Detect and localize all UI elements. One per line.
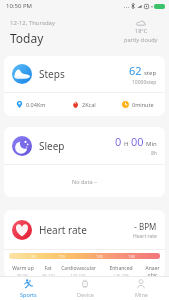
staticText: Anaerobic [145, 265, 160, 278]
button[interactable]: Steps [4, 56, 165, 116]
staticText: 10000step [132, 79, 157, 86]
button[interactable]: Mine [113, 277, 169, 300]
staticText: 62 [129, 63, 142, 78]
staticText: Steps [39, 67, 65, 81]
staticText: 80-95 [17, 273, 28, 278]
staticText: partly cloudy [124, 36, 158, 43]
staticText: 138 [128, 254, 135, 259]
staticText: 0 [115, 134, 122, 149]
staticText: No data ~ [72, 178, 98, 185]
staticText: 10:50 PM [6, 2, 32, 10]
staticText: Cardiovascular [61, 265, 96, 272]
staticText: Heart rate [133, 233, 157, 240]
staticText: step [144, 69, 157, 77]
staticText: 18°C [135, 27, 148, 34]
staticText: - [134, 220, 137, 232]
staticText: Warm up [12, 265, 34, 272]
staticText: 110-125 [70, 273, 86, 278]
staticText: 00 [131, 134, 144, 149]
staticText: H [124, 140, 129, 148]
staticText: Enhanced [109, 265, 133, 272]
button[interactable]: Sports [0, 277, 57, 300]
staticText: Mine [135, 291, 148, 298]
staticText: 0.04Km [26, 101, 46, 108]
staticText: 125 [96, 254, 103, 259]
staticText: 95-110 [42, 273, 55, 278]
staticText: BPM [139, 221, 157, 232]
staticText: Fat [44, 265, 52, 272]
staticText: 95 [31, 254, 36, 259]
staticText: Today [10, 30, 44, 46]
button[interactable]: Sleep [4, 127, 165, 197]
staticText: 0minute [132, 101, 154, 108]
staticText: Heart rate [39, 223, 87, 237]
button[interactable]: Heart rate [4, 210, 165, 278]
staticText: Sleep [39, 139, 65, 153]
staticText: Sports [20, 291, 37, 298]
staticText: 8h [151, 150, 157, 157]
button[interactable]: Device [57, 277, 113, 300]
staticText: Min [146, 140, 157, 148]
staticText: 110 [58, 254, 65, 259]
staticText: Device [77, 291, 94, 298]
staticText: 2Kcal [82, 101, 96, 108]
staticText: 125-138 [113, 273, 129, 278]
staticText: 12-12, Thursday [10, 19, 56, 27]
